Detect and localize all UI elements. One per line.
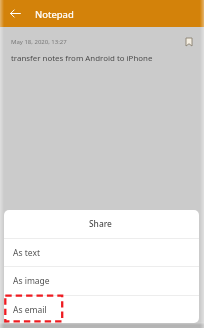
button[interactable]: Back bbox=[0, 0, 30, 27]
staticText: As image bbox=[13, 275, 50, 287]
button[interactable]: Bookmark bbox=[182, 35, 196, 49]
staticText: As text bbox=[13, 247, 40, 259]
staticText: As email bbox=[13, 304, 47, 316]
button[interactable]: As image bbox=[4, 267, 199, 295]
staticText: Share bbox=[89, 218, 112, 229]
staticText: transfer notes from Android to iPhone bbox=[11, 53, 153, 64]
staticText: May 18, 2020, 13:27 bbox=[11, 38, 67, 46]
staticText: Notepad bbox=[35, 8, 74, 21]
button[interactable]: As email bbox=[4, 296, 199, 323]
button[interactable]: As text bbox=[4, 239, 199, 266]
